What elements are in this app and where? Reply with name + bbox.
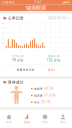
staticText: 查看历史记录: [17, 68, 35, 71]
button[interactable]: 心率记录: [0, 14, 72, 22]
staticText: 67.66%: [44, 94, 55, 97]
staticText: 平均心率: [12, 54, 24, 58]
staticText: 肌肉量: [34, 94, 43, 97]
staticText: 首页: [6, 120, 12, 124]
button[interactable]: 查看历史记录: [0, 64, 72, 75]
staticText: 水分: [34, 101, 40, 104]
staticText: 55.1%: [41, 100, 50, 104]
staticText: 12:00: [35, 49, 39, 51]
button[interactable]: 运动: [18, 110, 36, 128]
staticText: 18:00: [50, 49, 54, 51]
staticText: 90: [2, 32, 4, 34]
staticText: 150: [1, 22, 4, 24]
staticText: 中国移动: [2, 1, 14, 4]
staticText: 健康数据: [26, 5, 46, 11]
staticText: 24:00: [66, 49, 70, 51]
staticText: 9:41: [35, 0, 42, 4]
button[interactable]: 首页: [0, 110, 18, 128]
staticText: 0: [3, 47, 4, 49]
staticText: 0:00: [5, 49, 8, 51]
staticText: 心率记录: [8, 16, 24, 21]
staticText: 身体成分: [8, 80, 24, 85]
staticText: 更多: [48, 68, 54, 71]
staticText: 6:00: [20, 49, 23, 51]
button[interactable]: 发现: [36, 110, 54, 128]
staticText: 我的: [60, 120, 66, 124]
staticText: 发现: [42, 120, 48, 124]
staticText: 最高心率: [48, 54, 60, 58]
staticText: 2024-07-15: [48, 16, 66, 20]
button[interactable]: 我的: [54, 110, 72, 128]
staticText: 60: [2, 37, 4, 39]
staticText: 120: [1, 27, 4, 29]
staticText: 体脂率: [34, 87, 43, 90]
staticText: 132 次/分: [47, 59, 61, 62]
staticText: 78 次/分: [12, 59, 24, 62]
staticText: 20.3%: [44, 87, 53, 90]
staticText: 30: [2, 42, 4, 44]
staticText: 运动: [24, 120, 30, 124]
